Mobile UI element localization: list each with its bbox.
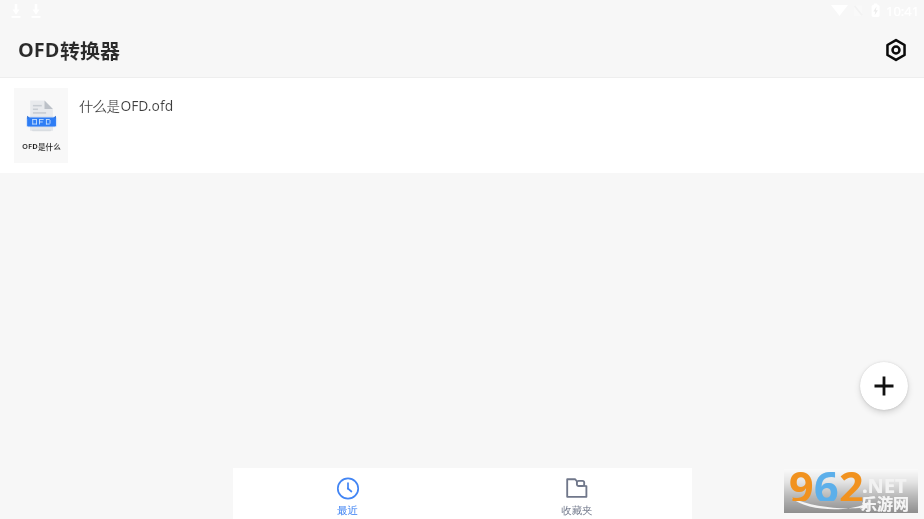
button[interactable]: Settings: [874, 28, 918, 72]
staticText: OFD: [18, 36, 60, 63]
staticText: 最近: [337, 504, 358, 517]
staticText: 9: [789, 457, 814, 501]
button[interactable]: OFD: [0, 78, 924, 173]
staticText: .NET: [862, 472, 907, 499]
staticText: 收藏夹: [561, 504, 593, 517]
button[interactable]: 收藏夹: [462, 468, 692, 519]
staticText: OFD: [22, 141, 38, 151]
staticText: 是什么: [38, 141, 61, 152]
staticText: 转换器: [60, 36, 120, 65]
button[interactable]: 最近: [233, 468, 462, 519]
staticText: 6: [814, 457, 839, 501]
staticText: 乐游网: [861, 491, 910, 514]
staticText: 2: [839, 457, 864, 501]
button[interactable]: Add: [860, 362, 908, 410]
staticText: 什么是OFD.ofd: [79, 96, 174, 115]
